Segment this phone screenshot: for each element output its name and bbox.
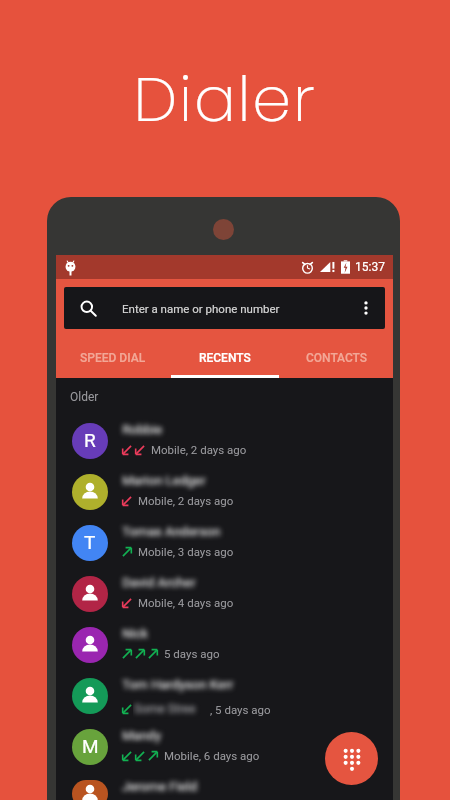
staticText: T [84, 531, 96, 553]
button[interactable]: SPEED DIAL [56, 329, 169, 378]
staticText: Mobile, 4 days ago [138, 596, 234, 609]
staticText: Jerome Field [122, 779, 198, 794]
staticText: R [84, 429, 96, 451]
staticText: David Archer [122, 575, 196, 590]
button[interactable]: T [56, 517, 393, 568]
button[interactable]: Tom Hardyson Kerr [56, 670, 393, 721]
staticText: Enter a name or phone number [122, 302, 280, 315]
staticText: Mobile, 6 days ago [164, 749, 260, 762]
staticText: Tom Hardyson Kerr [122, 677, 234, 692]
staticText: Tomas Anderson [122, 524, 221, 539]
button[interactable]: Dial pad [325, 732, 378, 785]
staticText: Mandy [122, 728, 162, 743]
button[interactable]: Nick [56, 619, 393, 670]
button[interactable]: David Archer [56, 568, 393, 619]
staticText: Robbie [122, 422, 163, 437]
staticText: M [82, 735, 99, 757]
button[interactable]: Enter a name or phone number [64, 287, 385, 329]
staticText: Marion Ledger [122, 473, 206, 488]
staticText: Nick [122, 626, 148, 641]
staticText: 15:37 [355, 260, 385, 274]
button[interactable]: CONTACTS [281, 329, 393, 378]
staticText: SPEED DIAL [80, 351, 146, 365]
staticText: RECENTS [199, 351, 251, 365]
button[interactable]: More options [347, 287, 385, 329]
staticText: 5 days ago [164, 647, 220, 660]
staticText: Mobile, 2 days ago [138, 494, 234, 507]
staticText: , 5 days ago [210, 703, 271, 716]
staticText: Older [70, 390, 99, 404]
button[interactable]: M [56, 721, 393, 772]
staticText: Mobile, 2 days ago [151, 443, 247, 456]
button[interactable]: Marion Ledger [56, 466, 393, 517]
staticText: CONTACTS [306, 351, 368, 365]
button[interactable]: RECENTS [169, 329, 281, 378]
staticText: Some Stree [134, 702, 196, 716]
button[interactable]: Jerome Field [56, 772, 393, 800]
button[interactable]: R [56, 415, 393, 466]
staticText: Dialer [0, 56, 450, 143]
staticText: Mobile, 3 days ago [138, 545, 234, 558]
